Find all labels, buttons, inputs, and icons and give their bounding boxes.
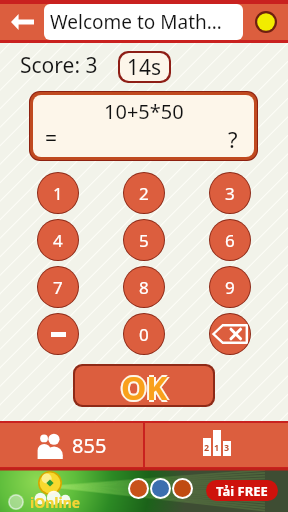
staticText: 855 [72, 432, 107, 459]
staticText: 9 [225, 276, 235, 299]
staticText: 10+5*50 [104, 98, 184, 125]
button[interactable]: OK [75, 366, 213, 405]
staticText: OK [121, 368, 168, 405]
button[interactable]: Minus [38, 314, 78, 354]
button[interactable]: Sound [243, 4, 288, 40]
button[interactable]: 7 [38, 267, 78, 307]
staticText: Tải FREE [216, 482, 268, 500]
button[interactable]: Players online [0, 423, 143, 467]
staticText: 2 [204, 441, 210, 453]
staticText: OK [121, 366, 168, 405]
button[interactable]: 1 [38, 173, 78, 213]
button[interactable]: Delete [210, 314, 250, 354]
button[interactable]: Leaderboard [145, 423, 288, 467]
staticText: = [45, 124, 58, 153]
staticText: 5 [139, 229, 149, 252]
button[interactable]: 5 [124, 220, 164, 260]
button[interactable]: Welcome to Math… [44, 4, 243, 40]
staticText: Welcome to Math… [50, 9, 222, 35]
staticText: iOnline [30, 493, 81, 512]
button[interactable]: 8 [124, 267, 164, 307]
staticText: OK [121, 366, 168, 403]
staticText: 3 [224, 441, 230, 453]
staticText: OK [123, 366, 170, 405]
staticText: 4 [53, 229, 63, 252]
staticText: 6 [225, 229, 235, 252]
button[interactable]: 6 [210, 220, 250, 260]
button[interactable]: 9 [210, 267, 250, 307]
staticText: 1 [214, 441, 220, 453]
staticText: 7 [53, 276, 63, 299]
button[interactable]: 0 [124, 314, 164, 354]
staticText: 1 [53, 182, 63, 205]
staticText: ? [228, 124, 238, 154]
button[interactable]: Tải FREE [206, 480, 278, 501]
staticText: 2 [139, 182, 149, 205]
button[interactable]: Back [0, 4, 44, 40]
staticText: 0 [139, 323, 149, 346]
button[interactable]: 4 [38, 220, 78, 260]
staticText: 3 [225, 182, 235, 205]
button[interactable]: 2 [124, 173, 164, 213]
staticText: OK [119, 366, 166, 405]
button[interactable]: 14s [120, 53, 169, 81]
staticText: 8 [139, 276, 149, 299]
button[interactable]: Advertisement [0, 468, 288, 512]
staticText: 14s [127, 53, 162, 81]
staticText: Score: 3 [20, 51, 98, 80]
button[interactable]: 3 [210, 173, 250, 213]
